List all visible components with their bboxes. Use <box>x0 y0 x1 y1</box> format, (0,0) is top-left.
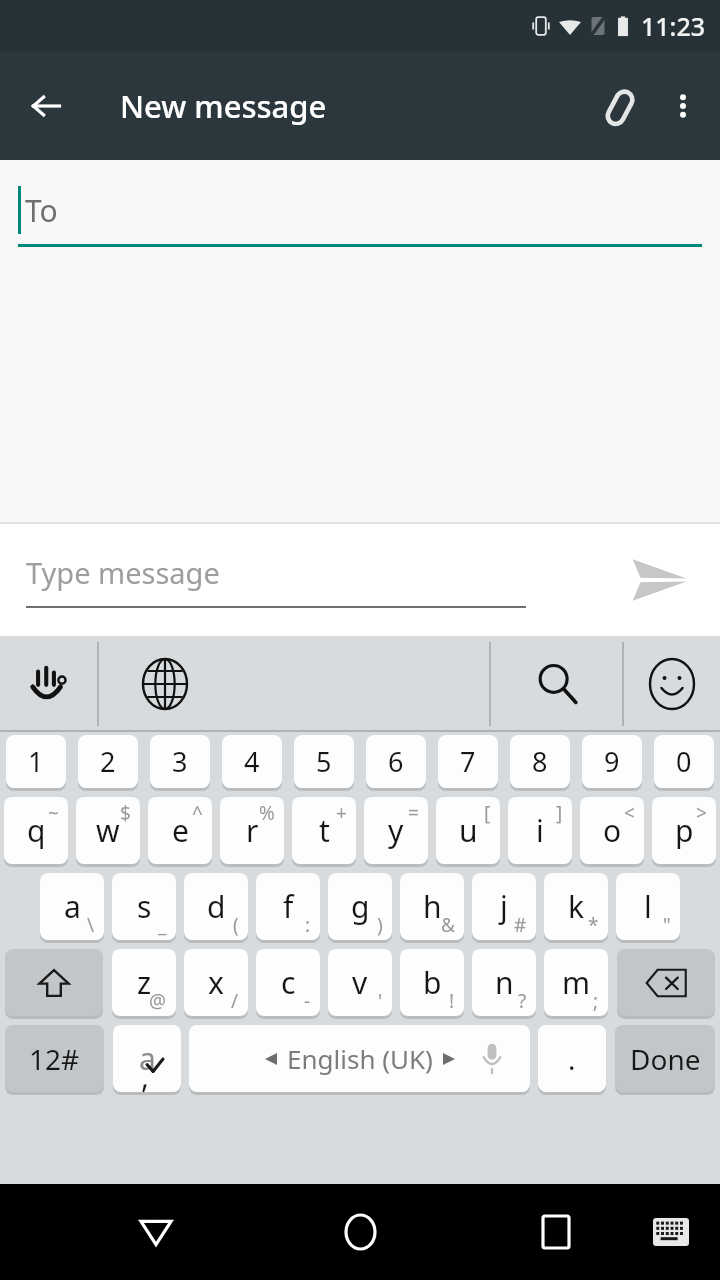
button[interactable]: TouchPal menu <box>0 636 97 732</box>
staticText: ) <box>377 912 383 938</box>
button[interactable]: q <box>4 797 68 864</box>
staticText: s <box>137 886 152 927</box>
staticText: 8 <box>532 743 548 780</box>
button[interactable]: a <box>40 873 104 940</box>
button[interactable]: m <box>544 949 608 1016</box>
staticText: b <box>423 962 442 1003</box>
button[interactable]: Home <box>324 1196 396 1268</box>
button[interactable]: Back <box>120 1196 192 1268</box>
button[interactable]: Attach <box>588 73 654 139</box>
staticText: = <box>408 800 419 826</box>
button[interactable]: x <box>184 949 248 1016</box>
button[interactable]: e <box>148 797 212 864</box>
button[interactable]: f <box>256 873 320 940</box>
staticText: ^ <box>192 800 203 826</box>
button[interactable]: 6 <box>366 735 426 788</box>
staticText: l <box>644 886 652 927</box>
staticText: o <box>603 810 622 851</box>
button[interactable]: Send <box>620 541 698 619</box>
button[interactable]: j <box>472 873 536 940</box>
staticText: Type message <box>26 553 220 592</box>
staticText: t <box>319 810 330 851</box>
staticText: 12# <box>29 1040 80 1078</box>
staticText: d <box>207 886 226 927</box>
staticText: y <box>388 810 404 851</box>
staticText: g <box>351 886 370 927</box>
staticText: [ <box>484 800 491 826</box>
button[interactable]: More options <box>654 77 712 135</box>
button[interactable]: Hide keyboard <box>640 1201 702 1263</box>
button[interactable]: 9 <box>582 735 642 788</box>
staticText: ~ <box>48 800 59 826</box>
staticText: New message <box>120 85 327 127</box>
button[interactable]: u <box>436 797 500 864</box>
staticText: \ <box>87 912 95 938</box>
button[interactable]: Recents <box>520 1196 592 1268</box>
button[interactable]: 1 <box>6 735 66 788</box>
button[interactable]: n <box>472 949 536 1016</box>
staticText: , <box>141 1056 150 1092</box>
button[interactable]: Shift <box>5 949 103 1016</box>
staticText: @ <box>149 988 167 1014</box>
staticText: / <box>231 988 239 1014</box>
button[interactable]: z <box>112 949 176 1016</box>
staticText: f <box>283 886 294 927</box>
button[interactable]: r <box>220 797 284 864</box>
button[interactable]: Done <box>615 1025 715 1092</box>
button[interactable]: w <box>76 797 140 864</box>
button[interactable]: s <box>112 873 176 940</box>
button[interactable]: Search <box>491 636 622 732</box>
button[interactable]: 4 <box>222 735 282 788</box>
button[interactable]: Back <box>14 74 78 138</box>
button[interactable]: 2 <box>78 735 138 788</box>
button[interactable]: p <box>652 797 716 864</box>
staticText: a <box>64 886 81 927</box>
button[interactable]: b <box>400 949 464 1016</box>
button[interactable]: Type message <box>26 553 526 608</box>
button[interactable]: Backspace <box>617 949 715 1016</box>
button[interactable]: l <box>616 873 680 940</box>
staticText: < <box>624 800 635 826</box>
staticText: q <box>27 810 46 851</box>
button[interactable]: o <box>580 797 644 864</box>
button[interactable]: Emoji <box>624 636 720 732</box>
button[interactable]: 5 <box>294 735 354 788</box>
staticText: z <box>137 962 152 1003</box>
button[interactable]: c <box>256 949 320 1016</box>
button[interactable]: h <box>400 873 464 940</box>
staticText: ] <box>556 800 563 826</box>
staticText: h <box>423 886 442 927</box>
staticText: k <box>568 886 585 927</box>
staticText: - <box>304 988 311 1014</box>
button[interactable]: Autocorrect <box>113 1025 181 1092</box>
staticText: English (UK) <box>287 1041 433 1076</box>
button[interactable]: Space <box>189 1025 530 1092</box>
staticText: 11:23 <box>641 9 706 43</box>
button[interactable]: v <box>328 949 392 1016</box>
button[interactable]: 12# <box>5 1025 104 1092</box>
staticText: ' <box>378 988 383 1014</box>
button[interactable]: Language <box>99 636 489 732</box>
staticText: ( <box>233 912 239 938</box>
button[interactable]: i <box>508 797 572 864</box>
staticText: n <box>495 962 514 1003</box>
staticText: # <box>514 912 527 938</box>
button[interactable]: . <box>538 1025 606 1092</box>
button[interactable]: g <box>328 873 392 940</box>
staticText: > <box>696 800 707 826</box>
button[interactable]: 8 <box>510 735 570 788</box>
button[interactable]: d <box>184 873 248 940</box>
staticText: p <box>675 810 694 851</box>
button[interactable]: k <box>544 873 608 940</box>
staticText: 1 <box>28 743 44 780</box>
staticText: u <box>459 810 478 851</box>
button[interactable]: 0 <box>654 735 714 788</box>
staticText: + <box>336 800 347 826</box>
staticText: c <box>281 962 296 1003</box>
button[interactable]: 3 <box>150 735 210 788</box>
button[interactable]: 7 <box>438 735 498 788</box>
staticText: 5 <box>316 743 332 780</box>
staticText: To <box>25 190 58 231</box>
button[interactable]: y <box>364 797 428 864</box>
button[interactable]: t <box>292 797 356 864</box>
